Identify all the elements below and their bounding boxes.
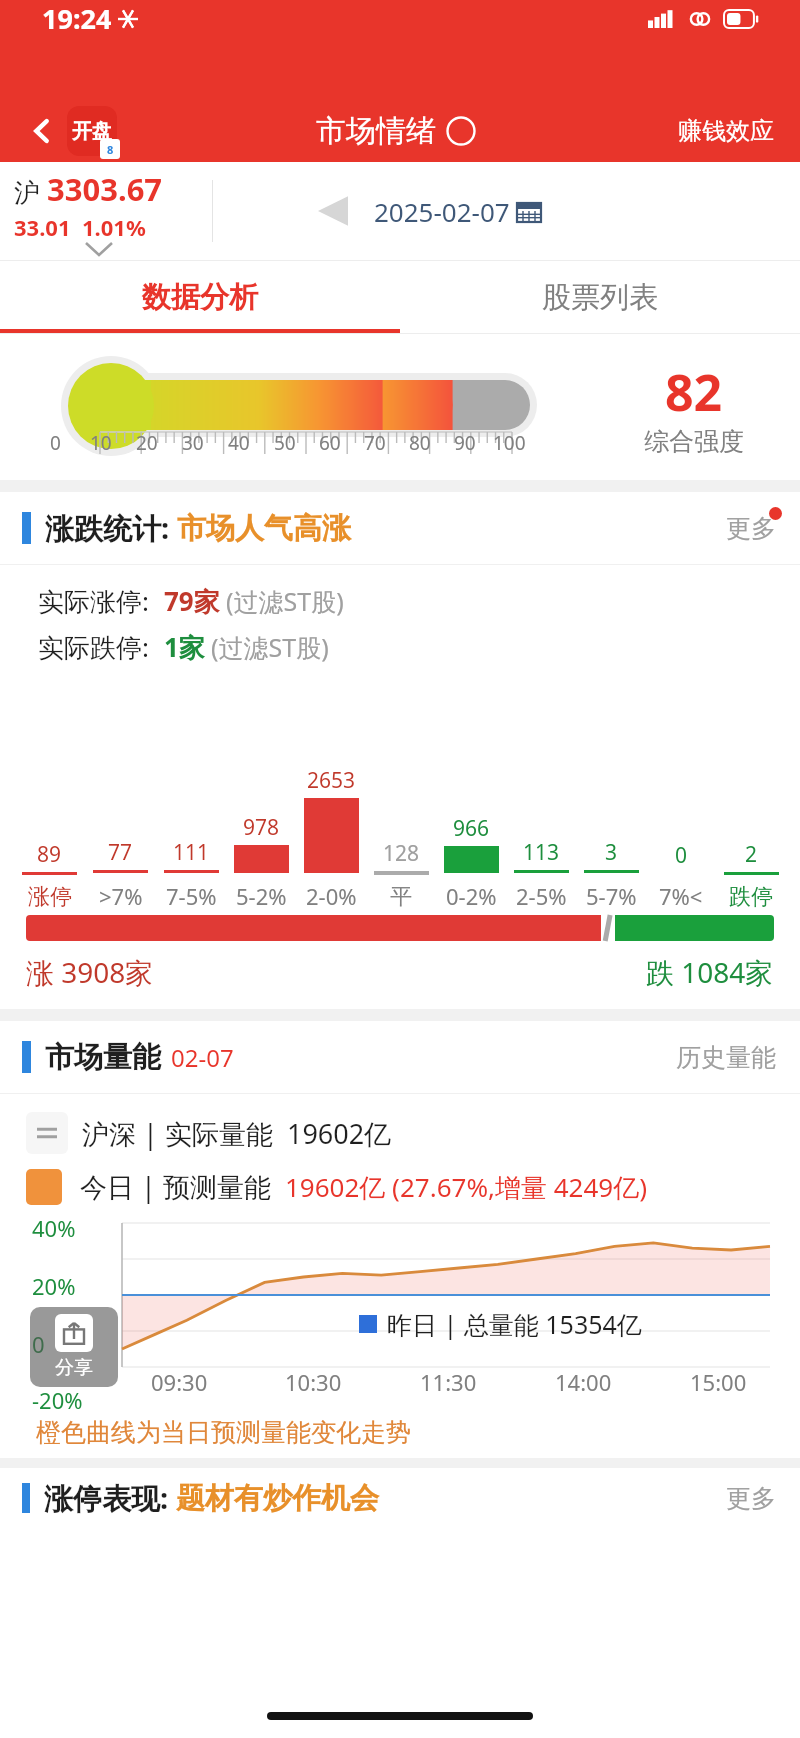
staticText: 128 (383, 839, 420, 868)
staticText: 平 (390, 883, 412, 911)
staticText: 数据分析 (142, 279, 258, 316)
staticText: 涨 3908家 (26, 953, 154, 991)
staticText: 市场量能 (45, 1039, 161, 1076)
staticText: 实际涨停: (38, 583, 156, 619)
button[interactable]: 市场量能 (0, 1021, 800, 1093)
staticText: -20% (32, 1385, 83, 1413)
staticText: 82 (665, 358, 723, 426)
staticText: 89 (37, 840, 62, 869)
staticText: 90 (454, 430, 476, 456)
staticText: 30 (182, 430, 204, 456)
staticText: 涨跌统计: (45, 508, 177, 548)
staticText: 80 (409, 430, 431, 456)
staticText: 0 (675, 841, 688, 870)
staticText: 2653 (307, 766, 356, 795)
staticText: 5-2% (236, 881, 287, 911)
staticText: 10:30 (285, 1367, 342, 1397)
staticText: 股票列表 (542, 279, 658, 316)
staticText: 2 (745, 840, 758, 869)
staticText: 0 (32, 1329, 45, 1359)
staticText: 1家 (164, 629, 205, 665)
button[interactable]: 股票列表 (400, 261, 800, 333)
button[interactable]: 数据分析 (0, 261, 400, 333)
button[interactable]: Toggle (26, 1112, 68, 1154)
staticText: 2-5% (516, 881, 567, 911)
staticText: 涨停表现: (44, 1478, 176, 1518)
staticText: 8 (107, 142, 114, 157)
staticText: 2025-02-07 (374, 194, 510, 229)
staticText: 3303.67 (47, 168, 163, 210)
button[interactable]: 沪 (0, 162, 212, 260)
staticText: 5-7% (586, 881, 637, 911)
staticText: 70 (364, 430, 386, 456)
staticText: 20% (32, 1271, 76, 1301)
staticText: 40 (228, 430, 250, 456)
staticText: 更多 (726, 1483, 776, 1514)
staticText: 分享 (55, 1356, 93, 1380)
button[interactable]: Back (20, 109, 64, 153)
staticText: 02-07 (171, 1041, 234, 1074)
staticText: (过滤ST股) (211, 630, 329, 664)
staticText: (过滤ST股) (226, 584, 344, 618)
staticText: 3 (605, 838, 618, 867)
staticText: 0-2% (446, 881, 497, 911)
staticText: 978 (243, 813, 280, 842)
staticText: 40% (32, 1213, 76, 1243)
staticText: 历史量能 (676, 1042, 776, 1073)
staticText: 综合强度 (644, 426, 744, 457)
staticText: 橙色曲线为当日预测量能变化走势 (36, 1417, 411, 1448)
staticText: 11:30 (420, 1367, 477, 1397)
staticText: 今日 | 预测量能 (80, 1168, 285, 1205)
staticText: 79家 (164, 583, 220, 619)
staticText: 7-5% (166, 881, 217, 911)
button[interactable]: 涨跌统计: (0, 492, 800, 564)
button[interactable]: 赚钱效应 (672, 110, 780, 152)
staticText: 111 (173, 838, 210, 867)
staticText: 实际跌停: (38, 629, 156, 665)
staticText: 昨日 | 总量能 15354亿 (387, 1307, 642, 1341)
staticText: 跌 1084家 (646, 953, 774, 991)
staticText: 60 (319, 430, 341, 456)
staticText: 更多 (726, 513, 776, 544)
staticText: 跌停 (729, 883, 773, 911)
staticText: 市场情绪 (316, 112, 436, 150)
staticText: 0 (50, 430, 61, 456)
staticText: 15:00 (690, 1367, 747, 1397)
staticText: 19:24 (42, 0, 112, 37)
staticText: 7%< (659, 881, 703, 911)
staticText: 20 (136, 430, 158, 456)
staticText: 14:00 (555, 1367, 612, 1397)
staticText: 10 (90, 430, 112, 456)
staticText: 100 (493, 430, 526, 456)
button[interactable]: 市场情绪 (310, 112, 482, 150)
button[interactable]: 2025-02-07 (360, 188, 556, 234)
staticText: 77 (108, 838, 133, 867)
staticText: 19602亿 (27.67%,增量 4249亿) (285, 1169, 647, 1205)
staticText: 33.01 1.01% (14, 212, 146, 242)
staticText: 2-0% (306, 881, 357, 911)
button[interactable]: App icon (64, 103, 120, 159)
staticText: >7% (99, 881, 143, 911)
staticText: 沪 (14, 174, 47, 210)
staticText: 市场人气高涨 (177, 510, 351, 547)
staticText: 09:30 (151, 1367, 208, 1397)
button[interactable]: Share (30, 1307, 118, 1387)
button[interactable]: Previous day (318, 191, 348, 231)
staticText: 966 (453, 814, 490, 843)
staticText: 113 (523, 838, 560, 867)
staticText: 开盘 (72, 119, 112, 144)
staticText: 赚钱效应 (678, 116, 774, 146)
staticText: 50 (274, 430, 296, 456)
staticText: 题材有炒作机会 (176, 1480, 379, 1517)
staticText: 沪深 | 实际量能 19602亿 (82, 1115, 392, 1152)
staticText: 涨停 (28, 883, 72, 911)
